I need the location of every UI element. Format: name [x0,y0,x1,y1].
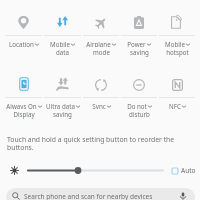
staticText: Search phone and scan for nearby devices [24,192,153,200]
staticText: Mobile [50,40,70,47]
staticText: Do not [127,102,147,109]
staticText: data [56,48,69,56]
staticText: saving [53,110,72,118]
staticText: Mobile [165,40,185,47]
staticText: Auto [181,166,196,175]
other: Brightness [10,166,19,175]
button[interactable]: Airplane mode [82,10,120,56]
staticText: Always On [6,102,37,109]
button[interactable]: Mobile data [43,10,82,56]
staticText: Touch and hold a quick setting button to… [7,135,179,152]
button[interactable]: Location [4,10,43,47]
staticText: Power [127,40,146,47]
staticText: Airplane [86,40,111,47]
button[interactable]: Power saving [120,10,158,56]
button[interactable]: Always On Display [4,72,43,118]
staticText: mode [93,48,110,56]
staticText: hotspot [166,48,189,56]
staticText: Display [13,110,35,118]
button[interactable]: Do not disturb [120,72,158,118]
staticText: saving [130,48,149,56]
button[interactable]: Search phone and scan for nearby devices [6,188,195,200]
staticText: Sync [92,102,106,109]
button[interactable]: Mobile hotspot [158,10,196,56]
button[interactable]: Sync [82,72,120,109]
staticText: NFC [169,102,181,109]
staticText: Ultra data [46,102,75,109]
button[interactable]: Auto [172,165,196,176]
button[interactable]: Ultra data saving [43,72,82,118]
button[interactable]: NFC [158,72,196,109]
staticText: Location [9,40,34,47]
staticText: disturb [129,110,150,118]
